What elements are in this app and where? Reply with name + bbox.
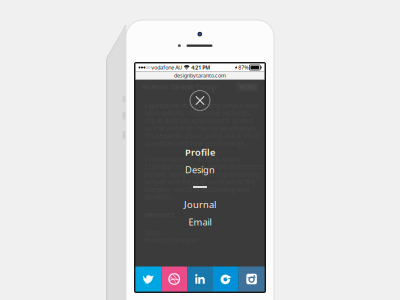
staticText: Journal xyxy=(184,198,216,211)
staticText: people designing and implementing xyxy=(144,170,259,179)
button[interactable]: Design xyxy=(135,161,264,178)
staticText: I specialise in designing simple web xyxy=(144,101,258,110)
button[interactable]: Profile xyxy=(135,143,264,161)
staticText: Design xyxy=(185,163,215,176)
button[interactable]: LinkedIn xyxy=(187,266,213,291)
staticText: 87% xyxy=(237,64,248,71)
staticText: EXPERIENCE xyxy=(144,212,174,219)
staticText: Profile xyxy=(185,146,215,158)
button[interactable]: Instagram xyxy=(239,266,264,291)
button[interactable]: Divider xyxy=(135,178,264,196)
button[interactable]: Journal xyxy=(135,196,264,213)
button[interactable]: Close menu xyxy=(187,87,213,113)
staticText: Nicholas Taranto Design xyxy=(141,83,218,91)
staticText: vodafone AU xyxy=(150,64,182,71)
staticText: MENU xyxy=(239,83,255,91)
staticText: I currently work at Xero where xyxy=(144,154,241,163)
staticText: designbytaranto.com xyxy=(174,72,226,79)
button[interactable]: Twitter xyxy=(135,266,161,291)
staticText: applications, responsive websites, xyxy=(144,108,251,117)
button[interactable]: Email xyxy=(135,213,264,230)
staticText: 4:21 PM xyxy=(191,64,210,71)
button[interactable]: Forrst xyxy=(213,266,239,291)
staticText: I collaborate with a range of talented xyxy=(144,162,262,171)
staticText: complex world of accounting and xyxy=(144,185,249,194)
button[interactable]: Dribbble xyxy=(161,266,187,291)
staticText: Email xyxy=(188,216,211,228)
